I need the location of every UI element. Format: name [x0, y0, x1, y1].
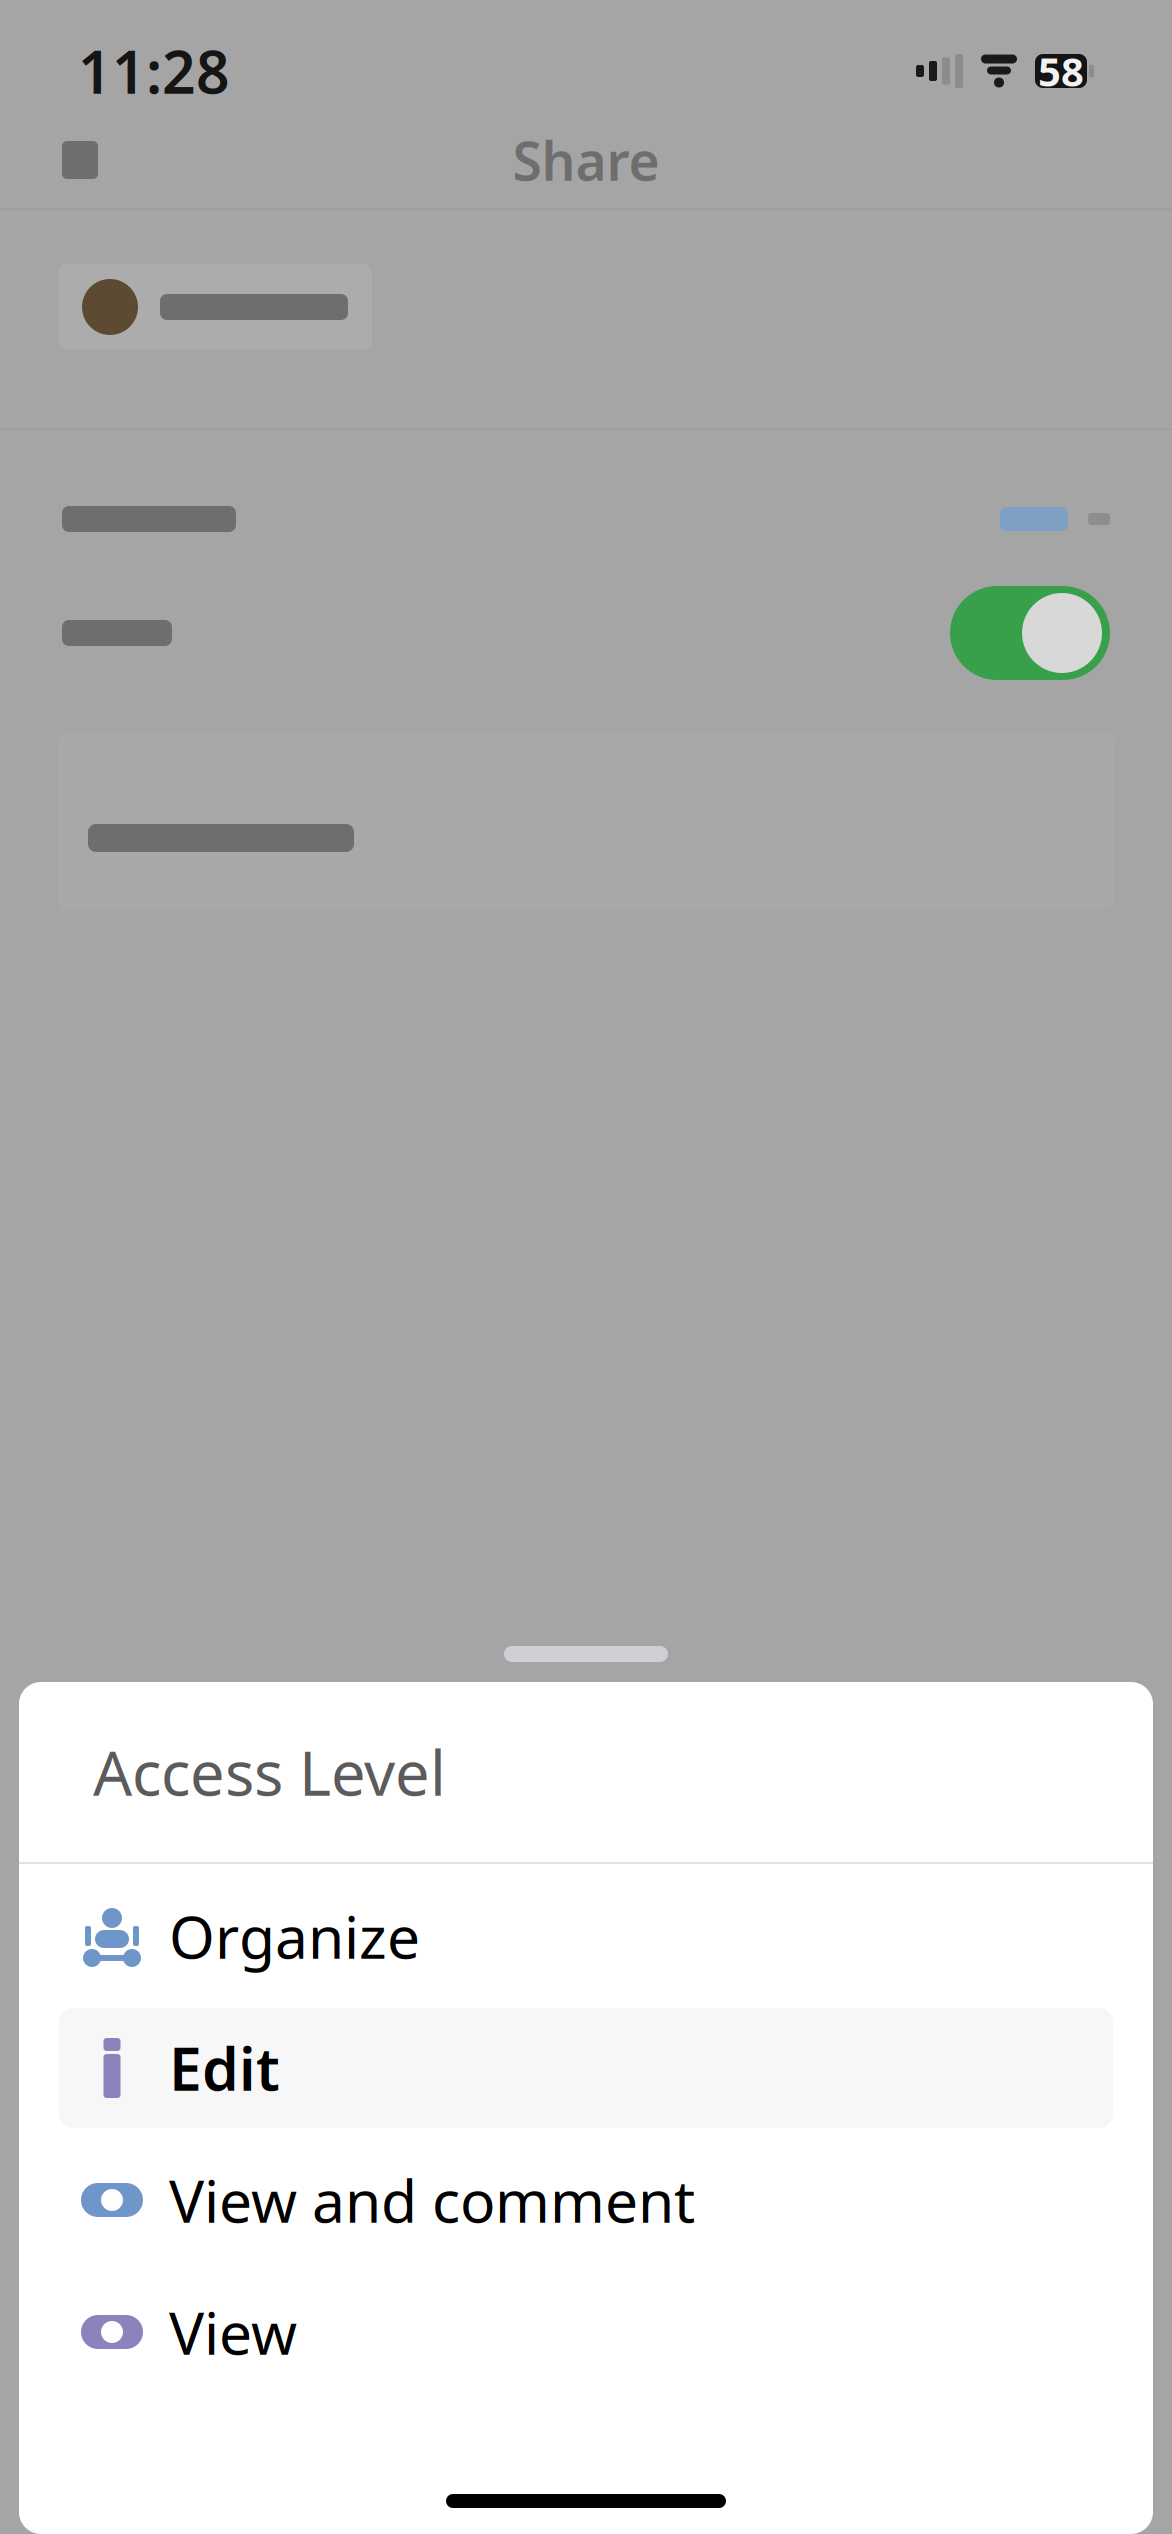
button[interactable]: View and comment: [19, 2140, 1153, 2260]
staticText: Share: [512, 125, 659, 195]
staticText: Edit: [169, 2029, 280, 2107]
staticText: 58: [1038, 44, 1084, 97]
staticText: Organize: [169, 1897, 420, 1975]
staticText: View: [169, 2293, 297, 2371]
button[interactable]: Organize: [19, 1876, 1153, 1996]
button[interactable]: Edit: [19, 2008, 1153, 2128]
button[interactable]: View: [19, 2272, 1153, 2392]
staticText: 11:28: [78, 32, 230, 110]
staticText: View and comment: [169, 2161, 695, 2239]
staticText: Access Level: [93, 1731, 446, 1813]
